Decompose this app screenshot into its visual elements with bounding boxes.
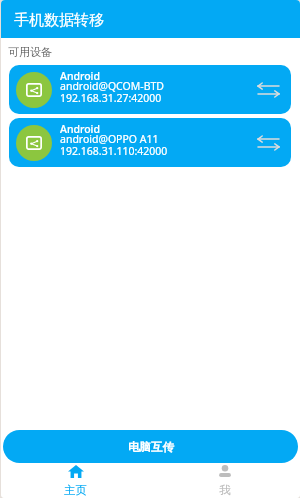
staticText: 192.168.31.27:42000	[60, 91, 162, 105]
staticText: 我	[219, 483, 231, 497]
button[interactable]: Android	[9, 65, 291, 114]
button[interactable]: 我	[150, 463, 300, 498]
other: Transfer	[253, 128, 283, 158]
staticText: 可用设备	[8, 45, 52, 59]
staticText: 192.168.31.110:42000	[60, 144, 168, 158]
staticText: 手机数据转移	[14, 11, 104, 30]
button[interactable]: 主页	[1, 463, 150, 498]
button[interactable]: 电脑互传	[3, 430, 298, 463]
staticText: 主页	[64, 483, 87, 497]
staticText: 电脑互传	[128, 440, 174, 454]
staticText: Android	[60, 69, 100, 83]
staticText: Android	[60, 122, 100, 136]
staticText: android@QCOM-BTD	[60, 79, 164, 93]
staticText: android@OPPO A11	[60, 132, 159, 146]
other: Transfer	[253, 75, 283, 105]
button[interactable]: Android	[9, 118, 291, 167]
